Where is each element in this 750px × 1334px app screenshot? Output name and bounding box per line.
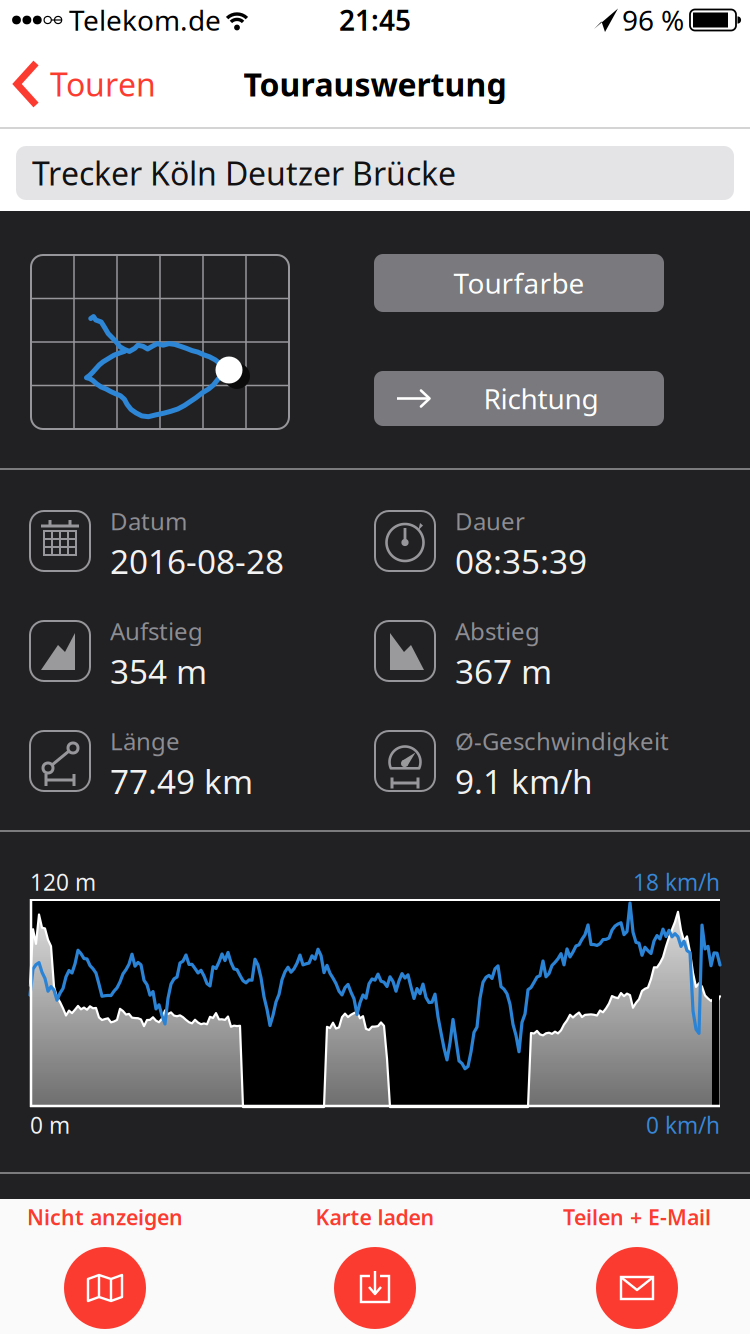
staticText: 18 km/h [633,867,720,897]
staticText: 120 m [30,867,96,897]
button[interactable]: Karte laden [290,1199,460,1334]
button[interactable]: Richtung [374,371,664,426]
button[interactable]: Trecker Köln Deutzer Brücke [16,146,734,200]
staticText: Ø-Geschwindigkeit [455,725,669,757]
staticText: 08:35:39 [455,539,587,583]
staticText: Datum [110,505,187,537]
staticText: Touren [50,63,156,105]
staticText: Tourauswertung [243,63,506,105]
button[interactable]: Teilen + E-Mail [552,1199,722,1334]
staticText: Tourfarbe [453,264,584,302]
staticText: Teilen + E-Mail [563,1203,711,1231]
staticText: 96 % [622,1,684,39]
staticText: 0 km/h [646,1110,720,1140]
staticText: Aufstieg [110,615,203,647]
staticText: 77.49 km [110,759,253,803]
button[interactable]: Touren [5,56,170,112]
staticText: 2016-08-28 [110,539,284,583]
staticText: 9.1 km/h [455,759,593,803]
staticText: Nicht anzeigen [27,1203,183,1231]
staticText: Telekom.de [69,1,221,39]
staticText: Länge [110,725,180,757]
staticText: Dauer [455,505,525,537]
staticText: 354 m [110,649,207,693]
staticText: Richtung [483,380,598,417]
staticText: 0 m [30,1110,70,1140]
staticText: 367 m [455,649,552,693]
button[interactable]: Tourfarbe [374,254,664,312]
staticText: Trecker Köln Deutzer Brücke [32,152,456,194]
staticText: Karte laden [315,1203,434,1231]
button[interactable]: Nicht anzeigen [20,1199,190,1334]
staticText: 21:45 [339,1,411,39]
staticText: Abstieg [455,615,540,647]
